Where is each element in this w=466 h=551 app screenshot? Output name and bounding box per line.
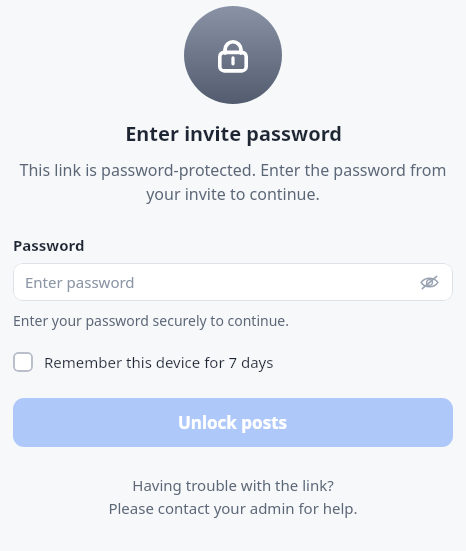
staticText: This link is password-protected. Enter t… xyxy=(14,159,452,205)
button[interactable]: Unlock posts xyxy=(13,398,453,447)
staticText: Enter invite password xyxy=(125,120,342,147)
button[interactable]: Enter password xyxy=(13,263,453,301)
staticText: Enter password xyxy=(25,272,417,292)
staticText: Password xyxy=(13,235,85,255)
staticText: Unlock posts xyxy=(178,411,288,434)
staticText: Enter your password securely to continue… xyxy=(13,311,289,330)
button[interactable]: Remember this device for 7 days xyxy=(13,352,453,372)
staticText: Remember this device for 7 days xyxy=(44,352,274,372)
staticText: Having trouble with the link? Please con… xyxy=(14,475,452,518)
button[interactable]: Show password xyxy=(417,270,441,294)
